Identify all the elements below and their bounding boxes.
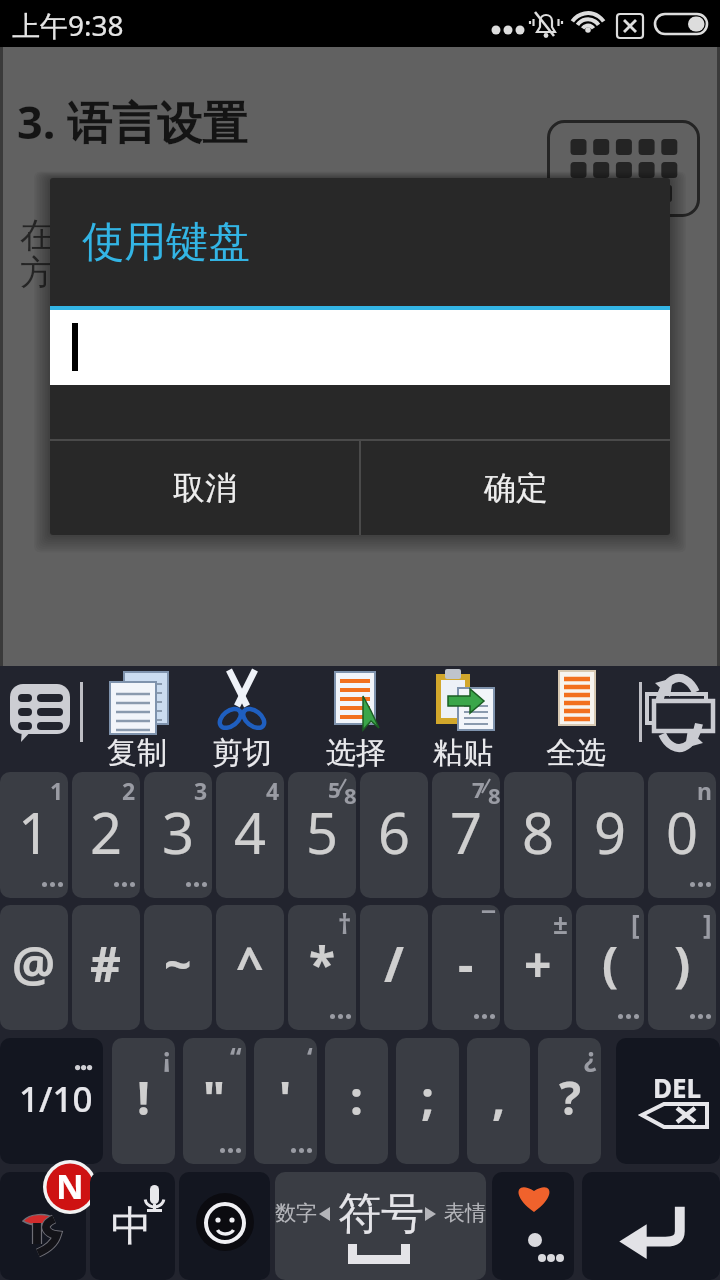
staticText: 5 bbox=[328, 774, 341, 802]
button[interactable]: Enter bbox=[582, 1172, 720, 1280]
staticText: “ bbox=[230, 1039, 242, 1074]
button[interactable]: ^ bbox=[216, 905, 284, 1030]
staticText: , bbox=[492, 1066, 506, 1129]
staticText: 5 bbox=[306, 794, 339, 870]
button[interactable]: 4 bbox=[216, 772, 284, 898]
button[interactable]: # bbox=[72, 905, 140, 1030]
staticText: 1 bbox=[18, 794, 51, 870]
button[interactable]: ' bbox=[254, 1038, 317, 1164]
button[interactable]: 粘贴 bbox=[411, 666, 515, 772]
staticText: : bbox=[350, 1066, 363, 1129]
staticText: 8 bbox=[522, 794, 555, 870]
button[interactable]: 1 bbox=[0, 772, 68, 898]
button[interactable]: 0 bbox=[648, 772, 716, 898]
staticText: 在此页面选择您喜欢的输入 方式 bbox=[20, 214, 428, 294]
staticText: 4 bbox=[266, 775, 280, 806]
staticText: 3 bbox=[162, 794, 195, 870]
button[interactable]: 复制 bbox=[85, 666, 189, 772]
staticText: 7 bbox=[472, 774, 485, 802]
staticText: 1/10 bbox=[19, 1075, 93, 1123]
staticText: 剪切 bbox=[212, 734, 272, 772]
button[interactable]: 全选 bbox=[524, 666, 628, 772]
button[interactable]: ; bbox=[396, 1038, 459, 1164]
staticText: 7 bbox=[450, 794, 483, 870]
button[interactable]: - bbox=[432, 905, 500, 1030]
staticText: 6 bbox=[378, 794, 411, 870]
staticText: 符号 bbox=[338, 1187, 424, 1241]
button[interactable]: 1/10 bbox=[0, 1038, 103, 1164]
staticText: 全选 bbox=[546, 734, 606, 772]
button[interactable]: Emoticons bbox=[492, 1172, 574, 1280]
button[interactable]: 6 bbox=[360, 772, 428, 898]
staticText: 8 bbox=[344, 780, 357, 808]
staticText: 4 bbox=[234, 794, 267, 870]
button[interactable]: 3 bbox=[144, 772, 212, 898]
staticText: ! bbox=[137, 1066, 150, 1129]
staticText: ± bbox=[553, 906, 568, 941]
button[interactable]: 8 bbox=[504, 772, 572, 898]
staticText: ] bbox=[703, 906, 712, 941]
button[interactable]: 确定 bbox=[361, 441, 670, 535]
staticText: [ bbox=[631, 906, 640, 941]
staticText: ¯ bbox=[482, 906, 496, 941]
staticText: 0 bbox=[666, 794, 699, 870]
button[interactable]: Emoji bbox=[179, 1172, 270, 1280]
staticText: 8 bbox=[488, 780, 501, 808]
staticText: 数字 bbox=[275, 1200, 317, 1226]
staticText: 使用键盘 bbox=[82, 216, 250, 269]
staticText: ; bbox=[421, 1066, 435, 1129]
button[interactable]: @ bbox=[0, 905, 68, 1030]
staticText: + bbox=[524, 931, 552, 996]
button[interactable]: 选择 bbox=[304, 666, 408, 772]
staticText: ^ bbox=[236, 931, 264, 996]
staticText: 确定 bbox=[484, 468, 548, 508]
button[interactable]: ~ bbox=[144, 905, 212, 1030]
staticText: * bbox=[309, 931, 336, 996]
staticText: ? bbox=[559, 1066, 581, 1129]
button[interactable]: Delete bbox=[616, 1038, 720, 1164]
staticText: 9 bbox=[594, 794, 627, 870]
staticText: @ bbox=[12, 931, 56, 996]
button[interactable]: Candidate list bbox=[4, 680, 78, 748]
button[interactable]: 7 bbox=[432, 772, 500, 898]
staticText: 选择 bbox=[326, 734, 386, 772]
staticText: ( bbox=[602, 931, 619, 996]
button[interactable]: : bbox=[325, 1038, 388, 1164]
staticText: ‘ bbox=[307, 1039, 313, 1074]
staticText: 表情 bbox=[444, 1200, 486, 1226]
staticText: # bbox=[90, 931, 122, 996]
staticText: ¡ bbox=[163, 1039, 171, 1074]
staticText: 上午9:38 bbox=[12, 6, 124, 44]
button[interactable]: Space bbox=[275, 1172, 486, 1280]
staticText: ~ bbox=[164, 931, 192, 996]
button[interactable]: " bbox=[183, 1038, 246, 1164]
staticText: " bbox=[203, 1066, 226, 1129]
staticText: 1 bbox=[50, 775, 64, 806]
staticText: 2 bbox=[122, 775, 136, 806]
button[interactable]: 9 bbox=[576, 772, 644, 898]
button[interactable]: , bbox=[467, 1038, 530, 1164]
staticText: 中 bbox=[111, 1201, 152, 1253]
button[interactable]: / bbox=[360, 905, 428, 1030]
button[interactable]: 中 bbox=[90, 1172, 175, 1280]
button[interactable]: ( bbox=[576, 905, 644, 1030]
button[interactable]: 2 bbox=[72, 772, 140, 898]
staticText: † bbox=[338, 906, 352, 941]
button[interactable]: 剪切 bbox=[190, 666, 294, 772]
button[interactable]: ? bbox=[538, 1038, 601, 1164]
button[interactable]: ! bbox=[112, 1038, 175, 1164]
button[interactable]: Switch layout bbox=[645, 678, 717, 756]
staticText: ¿ bbox=[584, 1039, 597, 1074]
button[interactable]: Input method bbox=[0, 1172, 86, 1280]
button[interactable]: Show keyboard bbox=[547, 120, 700, 217]
staticText: ' bbox=[279, 1066, 292, 1129]
button[interactable]: + bbox=[504, 905, 572, 1030]
staticText: n bbox=[697, 775, 712, 806]
staticText: DEL bbox=[653, 1070, 702, 1105]
staticText: N bbox=[56, 1163, 84, 1209]
button[interactable]: * bbox=[288, 905, 356, 1030]
button[interactable]: 取消 bbox=[50, 441, 359, 535]
staticText: 粘贴 bbox=[433, 734, 493, 772]
button[interactable]: 5 bbox=[288, 772, 356, 898]
button[interactable]: ) bbox=[648, 905, 716, 1030]
